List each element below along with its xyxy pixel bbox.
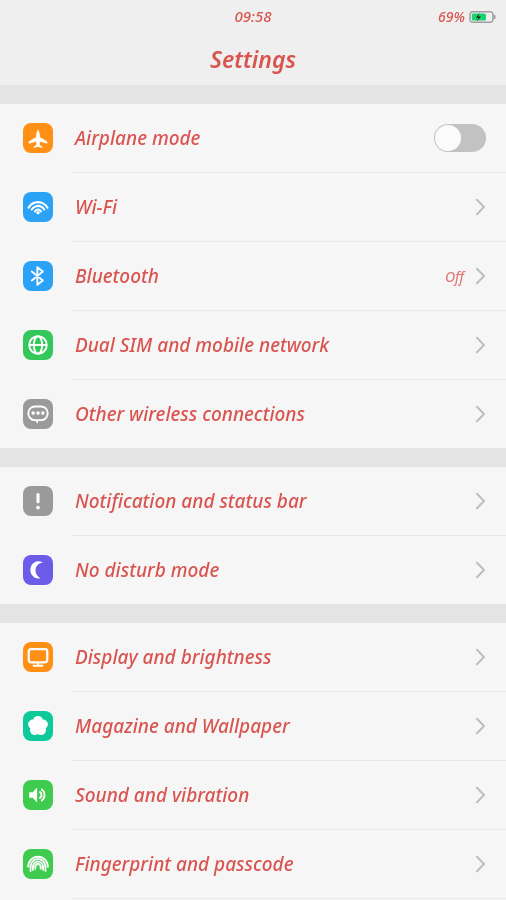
staticText: Other wireless connections <box>75 401 305 427</box>
button[interactable]: Wi-Fi <box>0 173 506 241</box>
staticText: Display and brightness <box>75 644 272 670</box>
staticText: Off <box>445 267 465 286</box>
staticText: Settings <box>210 43 297 74</box>
staticText: Fingerprint and passcode <box>75 851 294 877</box>
staticText: Wi-Fi <box>75 194 118 220</box>
staticText: 69% <box>438 7 465 26</box>
staticText: Bluetooth <box>75 263 159 289</box>
button[interactable]: Notification and status bar <box>0 467 506 535</box>
staticText: Dual SIM and mobile network <box>75 332 330 358</box>
button[interactable]: Fingerprint and passcode <box>0 830 506 898</box>
button[interactable]: Airplane mode <box>0 104 506 172</box>
staticText: Notification and status bar <box>75 488 307 514</box>
button[interactable]: Airplane mode toggle <box>434 124 486 152</box>
button[interactable]: Bluetooth <box>0 242 506 310</box>
button[interactable]: Magazine and Wallpaper <box>0 692 506 760</box>
staticText: Magazine and Wallpaper <box>75 713 290 739</box>
button[interactable]: Display and brightness <box>0 623 506 691</box>
staticText: 09:58 <box>234 6 272 26</box>
button[interactable]: Other wireless connections <box>0 380 506 448</box>
button[interactable]: No disturb mode <box>0 536 506 604</box>
staticText: Sound and vibration <box>75 782 250 808</box>
staticText: Airplane mode <box>75 125 201 151</box>
staticText: No disturb mode <box>75 557 220 583</box>
button[interactable]: Sound and vibration <box>0 761 506 829</box>
button[interactable]: Dual SIM and mobile network <box>0 311 506 379</box>
